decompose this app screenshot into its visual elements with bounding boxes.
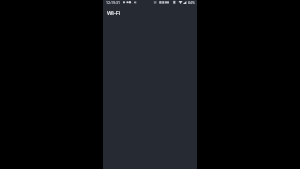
button[interactable]: Wi-Fi settings <box>103 9 197 20</box>
staticText: 84% <box>188 0 195 5</box>
staticText: 12:19:31 <box>106 0 120 5</box>
staticText: Wi-Fi <box>107 9 121 17</box>
